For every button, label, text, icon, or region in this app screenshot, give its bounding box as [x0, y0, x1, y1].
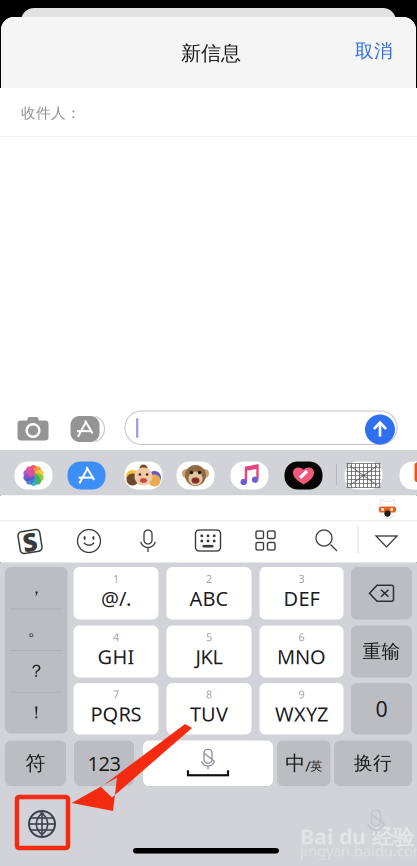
button[interactable]: Emoji: [77, 529, 100, 552]
button[interactable]: 4 GHI: [73, 625, 158, 677]
button[interactable]: Memoji: [124, 461, 162, 489]
staticText: 新信息: [181, 41, 241, 66]
button[interactable]: Fitness: [284, 461, 322, 489]
button[interactable]: 中英: [277, 740, 330, 786]
staticText: ，: [28, 577, 45, 598]
staticText: 换行: [354, 752, 392, 775]
button[interactable]: 1 @/.: [73, 567, 158, 619]
button[interactable]: Grid: [344, 461, 382, 489]
staticText: 6: [298, 630, 304, 644]
button[interactable]: Voice: [139, 528, 157, 554]
button[interactable]: ！: [5, 692, 67, 733]
staticText: @/.: [101, 585, 131, 612]
staticText: PQRS: [90, 701, 141, 727]
button[interactable]: 换行: [334, 740, 412, 786]
button[interactable]: 重输: [351, 625, 412, 677]
button[interactable]: Collapse: [375, 535, 398, 548]
button[interactable]: 5 JKL: [166, 625, 251, 677]
staticText: 3: [298, 572, 304, 586]
staticText: GHI: [97, 643, 134, 670]
button[interactable]: 6 MNO: [259, 625, 343, 677]
staticText: 符: [25, 751, 45, 776]
staticText: 取消: [355, 39, 393, 62]
button[interactable]: 符: [5, 740, 66, 786]
button[interactable]: App Store: [63, 407, 111, 451]
button[interactable]: Camera: [7, 407, 59, 451]
button[interactable]: Delete: [351, 567, 412, 619]
staticText: 8: [206, 687, 212, 702]
button[interactable]: Panel: [256, 531, 275, 550]
button[interactable]: ？: [5, 650, 67, 692]
staticText: S: [22, 525, 37, 558]
staticText: 2: [206, 572, 212, 586]
button[interactable]: 3 DEF: [259, 567, 343, 619]
staticText: DEF: [283, 585, 319, 612]
staticText: WXYZ: [275, 701, 328, 727]
staticText: JKL: [195, 643, 222, 670]
staticText: Bai du 经验: [300, 822, 414, 850]
button[interactable]: 8 TUV: [166, 683, 251, 734]
button[interactable]: App Store: [67, 461, 105, 489]
staticText: 1: [113, 572, 119, 586]
button[interactable]: Send: [365, 414, 395, 444]
staticText: 7: [113, 687, 119, 702]
button[interactable]: Sogou: [16, 528, 43, 554]
button[interactable]: Animoji: [176, 461, 214, 489]
staticText: 重输: [362, 640, 400, 663]
button[interactable]: Search: [316, 530, 338, 552]
staticText: 4: [113, 630, 119, 644]
staticText: 5: [206, 630, 212, 644]
button[interactable]: 123: [74, 740, 134, 786]
button[interactable]: 空格: [143, 740, 273, 786]
staticText: 收件人：: [21, 104, 81, 122]
staticText: ABC: [189, 585, 228, 612]
button[interactable]: 切换键盘: [28, 810, 56, 838]
button[interactable]: Sogou: [399, 461, 417, 489]
button[interactable]: 取消: [339, 29, 409, 73]
staticText: 9: [298, 687, 304, 702]
button[interactable]: Keyboard: [195, 530, 220, 551]
button[interactable]: Music: [230, 461, 268, 489]
staticText: 中: [285, 751, 305, 776]
button[interactable]: 7 PQRS: [73, 683, 158, 734]
staticText: 。: [28, 619, 45, 640]
staticText: ！: [28, 702, 45, 723]
button[interactable]: Photos: [14, 461, 52, 489]
staticText: 英: [310, 759, 322, 774]
staticText: TUV: [190, 701, 228, 727]
staticText: ？: [28, 660, 45, 682]
staticText: 0: [375, 695, 387, 723]
staticText: jingyan.baidu.com: [300, 841, 417, 860]
button[interactable]: 0: [351, 683, 412, 734]
staticText: /: [305, 756, 310, 775]
staticText: MNO: [277, 643, 326, 670]
button[interactable]: 9 WXYZ: [259, 683, 343, 734]
button[interactable]: ，: [5, 567, 67, 609]
button[interactable]: 。: [5, 609, 67, 650]
staticText: 123: [87, 750, 120, 777]
button[interactable]: 2 ABC: [166, 567, 251, 619]
